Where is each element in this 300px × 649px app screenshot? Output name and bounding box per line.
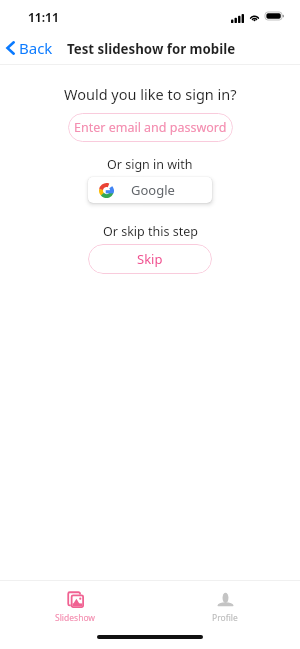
button[interactable]: Profile: [150, 581, 300, 626]
staticText: Or sign in with: [107, 156, 193, 173]
other: Profile: [217, 591, 234, 608]
staticText: Test slideshow for mobile: [67, 40, 236, 58]
button[interactable]: Skip: [88, 244, 212, 274]
button[interactable]: Back: [2, 36, 61, 60]
staticText: Google: [131, 181, 175, 199]
staticText: Slideshow: [55, 612, 96, 624]
staticText: Would you like to sign in?: [64, 84, 237, 104]
button[interactable]: Google: [88, 177, 212, 203]
button[interactable]: Slideshow: [0, 581, 150, 626]
staticText: Back: [19, 38, 53, 58]
staticText: 11:11: [28, 9, 59, 25]
staticText: Or skip this step: [103, 223, 198, 240]
staticText: Profile: [212, 612, 238, 624]
staticText: Enter email and password: [74, 119, 227, 136]
staticText: Skip: [137, 250, 163, 268]
other: Slideshow: [67, 591, 84, 608]
button[interactable]: Enter email and password: [68, 113, 233, 142]
